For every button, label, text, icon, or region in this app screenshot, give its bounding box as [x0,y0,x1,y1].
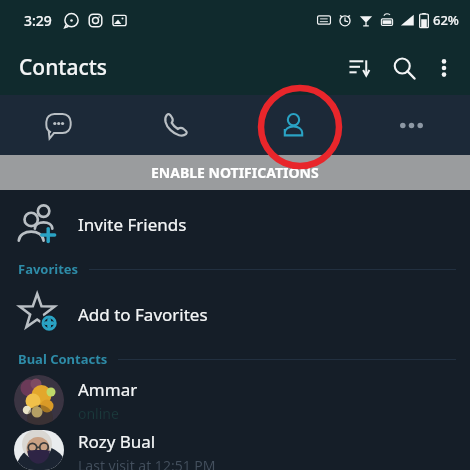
button[interactable]: Search [382,46,426,90]
button[interactable]: Add to Favorites [0,280,470,348]
staticText: Favorites [18,260,79,278]
staticText: Last visit at 12:51 PM [78,456,216,470]
staticText: Add to Favorites [78,303,208,326]
staticText: Bual Contacts [18,350,108,368]
staticText: 62% [433,11,459,29]
staticText: ENABLE NOTIFICATIONS [151,163,319,182]
button[interactable]: More options [426,50,462,86]
button[interactable]: ENABLE NOTIFICATIONS [0,155,470,190]
staticText: Contacts [19,53,107,82]
staticText: 3:29 [24,11,52,30]
button[interactable]: More [352,95,470,155]
button[interactable]: Calls [117,95,234,155]
button[interactable]: Sort [338,46,382,90]
button[interactable]: Rozy Bual [0,430,470,470]
button[interactable]: Invite Friends [0,190,470,258]
staticText: online [78,404,119,423]
staticText: Ammar [78,378,138,401]
button[interactable]: Chats [0,95,117,155]
button[interactable]: Contacts [234,95,352,155]
staticText: Rozy Bual [78,430,156,453]
staticText: Invite Friends [78,213,187,236]
button[interactable]: Ammar [0,370,470,430]
